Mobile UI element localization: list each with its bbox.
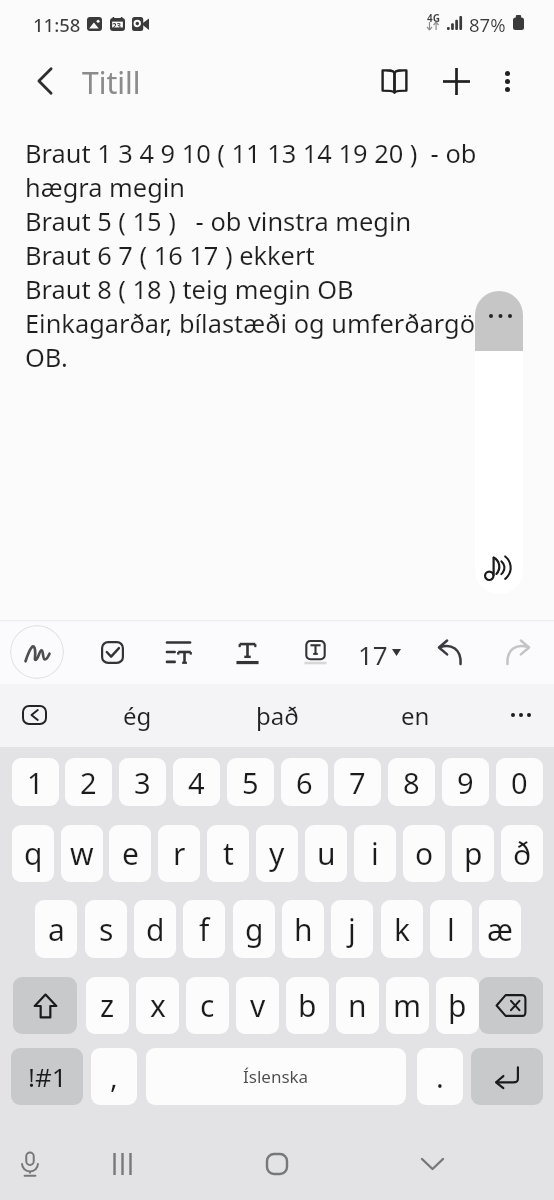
button[interactable]: y — [256, 825, 298, 882]
staticText: r — [173, 833, 186, 874]
staticText: æ — [487, 909, 513, 950]
staticText: 87% — [469, 12, 506, 37]
staticText: t — [223, 833, 234, 874]
button[interactable]: Navigate up — [21, 57, 69, 105]
button[interactable]: o — [403, 825, 445, 882]
button[interactable]: m — [386, 977, 429, 1034]
button[interactable]: Reading mode — [370, 57, 418, 105]
staticText: 5 — [242, 763, 259, 802]
button[interactable]: æ — [479, 900, 521, 958]
staticText: Titill — [82, 62, 141, 103]
button[interactable]: Íslenska — [146, 1048, 406, 1105]
staticText: 3 — [134, 763, 151, 802]
staticText: v — [250, 985, 266, 1026]
button[interactable]: Text box — [291, 628, 339, 676]
button[interactable]: Text style — [223, 628, 271, 676]
staticText: a — [48, 909, 65, 950]
button[interactable]: i — [354, 825, 396, 882]
staticText: c — [200, 985, 215, 1026]
button[interactable]: d — [134, 900, 176, 958]
button[interactable]: Recent apps — [92, 1134, 152, 1194]
staticText: y — [269, 833, 285, 874]
button[interactable]: Add — [432, 57, 480, 105]
button[interactable]: g — [233, 900, 275, 958]
button[interactable]: Undo — [426, 628, 474, 676]
staticText: b — [298, 985, 317, 1026]
staticText: q — [24, 833, 43, 874]
button[interactable]: Shift — [13, 977, 77, 1034]
staticText: Braut 1 3 4 9 10 ( 11 13 14 19 20 ) - ob… — [25, 136, 511, 374]
button[interactable]: ð — [501, 825, 543, 882]
button[interactable]: 1 — [12, 758, 59, 806]
button[interactable]: það — [222, 688, 332, 742]
button[interactable]: Redo — [494, 628, 542, 676]
staticText: ég — [123, 699, 152, 732]
button[interactable]: a — [35, 900, 77, 958]
staticText: g — [245, 909, 264, 950]
staticText: n — [348, 985, 367, 1026]
button[interactable]: Enter — [471, 1048, 543, 1105]
button[interactable]: Handwriting — [10, 625, 64, 679]
staticText: þ — [448, 985, 467, 1026]
button[interactable]: 2 — [65, 758, 112, 806]
staticText: z — [100, 985, 115, 1026]
button[interactable]: s — [85, 900, 127, 958]
button[interactable]: More options — [483, 57, 531, 105]
button[interactable]: ég — [82, 688, 192, 742]
button[interactable]: Toolbar handle — [475, 291, 523, 351]
staticText: ð — [513, 833, 532, 874]
button[interactable]: e — [109, 825, 151, 882]
button[interactable]: Checklist — [88, 628, 136, 676]
staticText: l — [447, 909, 455, 950]
button[interactable]: p — [452, 825, 494, 882]
staticText: m — [393, 985, 422, 1026]
button[interactable]: !#1 — [11, 1048, 83, 1105]
staticText: en — [401, 699, 430, 732]
button[interactable]: f — [183, 900, 225, 958]
button[interactable]: 0 — [496, 758, 543, 806]
button[interactable]: k — [381, 900, 423, 958]
button[interactable]: Hide keyboard — [402, 1134, 462, 1194]
staticText: það — [256, 699, 299, 732]
button[interactable]: z — [86, 977, 129, 1034]
button[interactable]: 8 — [388, 758, 435, 806]
button[interactable]: Voice recording — [484, 555, 516, 583]
button[interactable]: n — [336, 977, 379, 1034]
button[interactable]: 9 — [442, 758, 489, 806]
button[interactable]: Home — [247, 1134, 307, 1194]
button[interactable]: b — [286, 977, 329, 1034]
button[interactable]: Paragraph style — [155, 628, 203, 676]
button[interactable]: q — [12, 825, 54, 882]
button[interactable]: 6 — [281, 758, 328, 806]
button[interactable]: r — [158, 825, 200, 882]
button[interactable]: 4 — [173, 758, 220, 806]
staticText: 9 — [457, 763, 474, 802]
button[interactable]: u — [305, 825, 347, 882]
button[interactable]: , — [91, 1048, 137, 1105]
button[interactable]: v — [236, 977, 279, 1034]
button[interactable]: x — [136, 977, 179, 1034]
button[interactable]: Backspace — [479, 977, 543, 1034]
button[interactable]: h — [282, 900, 324, 958]
button[interactable]: þ — [436, 977, 479, 1034]
button[interactable]: t — [207, 825, 249, 882]
staticText: f — [199, 909, 210, 950]
button[interactable]: Previous suggestions — [9, 692, 59, 738]
button[interactable]: l — [430, 900, 472, 958]
button[interactable]: 7 — [334, 758, 381, 806]
button[interactable]: . — [417, 1048, 463, 1105]
button[interactable]: en — [360, 688, 470, 742]
staticText: , — [110, 1057, 118, 1096]
button[interactable]: More suggestions — [496, 692, 546, 738]
button[interactable]: c — [186, 977, 229, 1034]
button[interactable]: Voice input — [0, 1134, 60, 1194]
staticText: !#1 — [28, 1059, 67, 1094]
staticText: 23 — [112, 20, 122, 31]
button[interactable]: 5 — [227, 758, 274, 806]
button[interactable]: 3 — [119, 758, 166, 806]
button[interactable]: 17 — [352, 628, 412, 676]
staticText: d — [146, 909, 165, 950]
staticText: Íslenska — [243, 1065, 309, 1088]
button[interactable]: w — [61, 825, 103, 882]
button[interactable]: j — [331, 900, 373, 958]
